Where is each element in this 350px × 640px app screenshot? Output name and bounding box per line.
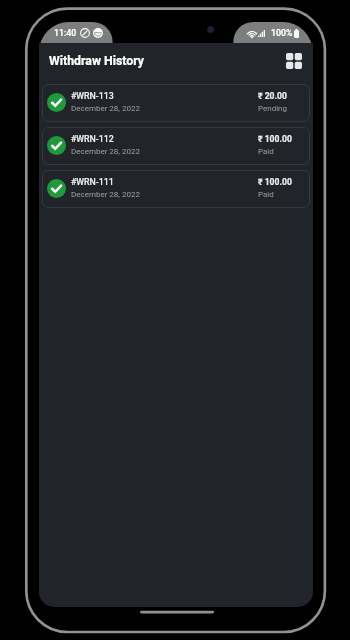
staticText: ₹ 20.00 xyxy=(258,91,287,101)
staticText: Paid xyxy=(258,190,274,199)
staticText: #WRN-111 xyxy=(71,177,114,187)
staticText: ₹ 100.00 xyxy=(258,177,292,187)
staticText: #WRN-112 xyxy=(71,134,114,144)
staticText: Pending xyxy=(258,104,288,113)
button[interactable]: Grid view xyxy=(281,48,307,74)
staticText: ₹ 100.00 xyxy=(258,134,292,144)
staticText: December 28, 2022 xyxy=(71,147,140,156)
button[interactable]: #WRN-113 xyxy=(42,84,310,122)
staticText: 11:40 xyxy=(54,28,77,38)
button[interactable]: #WRN-112 xyxy=(42,127,310,165)
staticText: 100% xyxy=(271,28,293,38)
staticText: December 28, 2022 xyxy=(71,190,140,199)
staticText: #WRN-113 xyxy=(71,91,114,101)
staticText: Withdraw History xyxy=(49,54,144,68)
staticText: December 28, 2022 xyxy=(71,104,140,113)
button[interactable]: #WRN-111 xyxy=(42,170,310,208)
staticText: Paid xyxy=(258,147,274,156)
